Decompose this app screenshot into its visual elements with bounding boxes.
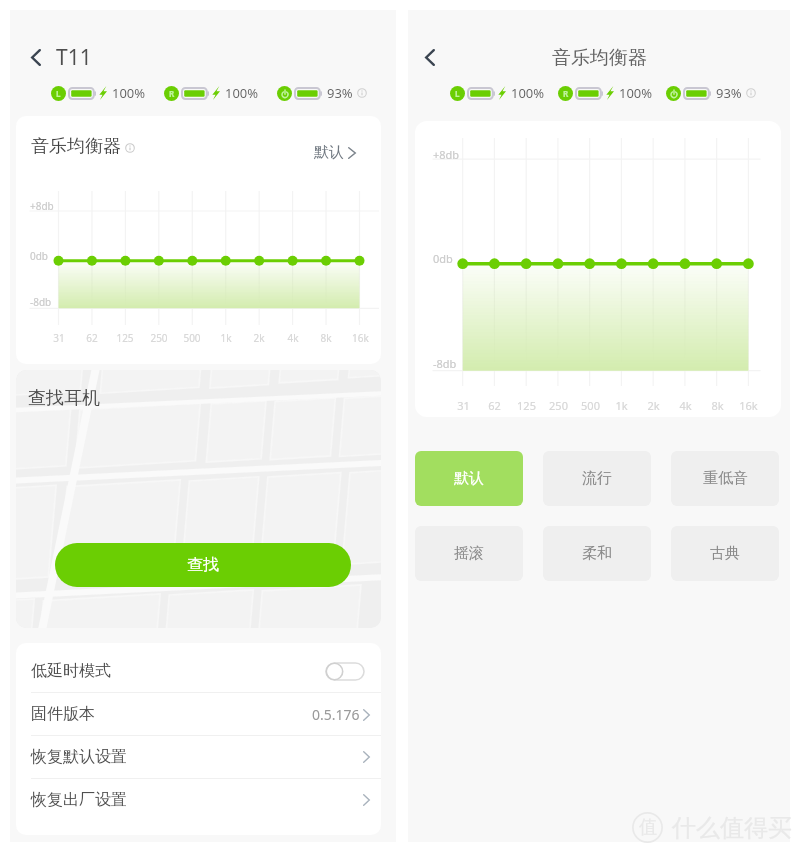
staticText: -8db — [433, 356, 457, 371]
staticText: 16k — [739, 398, 758, 413]
button[interactable]: 恢复出厂设置 — [16, 779, 381, 821]
staticText: 100% — [619, 84, 653, 102]
staticText: 默认 — [314, 143, 344, 162]
staticText: 125 — [116, 331, 134, 345]
button[interactable]: 低延时模式 — [16, 650, 381, 692]
staticText: 2k — [253, 331, 265, 345]
staticText: 100% — [225, 84, 259, 102]
staticText: 8k — [711, 398, 724, 413]
button[interactable]: 摇滚 — [415, 526, 523, 581]
staticText: 重低音 — [703, 469, 748, 488]
staticText: 古典 — [710, 544, 740, 563]
staticText: 31 — [457, 398, 470, 413]
staticText: 固件版本 — [31, 704, 95, 724]
button[interactable]: 固件版本 — [16, 693, 381, 735]
staticText: 什么值得买 — [672, 813, 792, 843]
staticText: R — [563, 88, 569, 99]
staticText: 125 — [517, 398, 536, 413]
staticText: -8db — [30, 295, 52, 309]
button[interactable]: 查找 — [55, 543, 351, 587]
staticText: 100% — [511, 84, 545, 102]
staticText: 1k — [615, 398, 628, 413]
button[interactable]: 柔和 — [543, 526, 651, 581]
staticText: L — [455, 88, 460, 99]
staticText: 查找耳机 — [28, 387, 100, 410]
button[interactable]: 流行 — [543, 451, 651, 506]
staticText: 93% — [327, 84, 353, 102]
staticText: 恢复出厂设置 — [31, 790, 127, 810]
staticText: 16k — [352, 331, 369, 345]
staticText: 恢复默认设置 — [31, 747, 127, 767]
staticText: 默认 — [454, 469, 484, 488]
staticText: 31 — [53, 331, 65, 345]
staticText: 250 — [549, 398, 568, 413]
staticText: 8k — [320, 331, 332, 345]
staticText: 500 — [581, 398, 600, 413]
staticText: L — [56, 88, 61, 99]
staticText: 0db — [433, 251, 453, 266]
button[interactable]: 古典 — [671, 526, 779, 581]
staticText: 音乐均衡器 — [552, 46, 647, 70]
staticText: +8db — [30, 199, 54, 213]
staticText: 摇滚 — [454, 544, 484, 563]
staticText: 250 — [150, 331, 168, 345]
button[interactable]: Back — [415, 42, 445, 72]
staticText: 2k — [647, 398, 660, 413]
staticText: 低延时模式 — [31, 661, 111, 681]
staticText: 音乐均衡器 — [31, 135, 121, 158]
staticText: 4k — [679, 398, 692, 413]
button[interactable]: Back — [21, 42, 51, 72]
staticText: 1k — [220, 331, 232, 345]
staticText: 93% — [716, 84, 742, 102]
staticText: 值 — [639, 816, 657, 839]
staticText: 柔和 — [582, 544, 612, 563]
staticText: 500 — [183, 331, 201, 345]
staticText: 62 — [86, 331, 98, 345]
staticText: 0db — [30, 249, 49, 263]
staticText: T11 — [56, 43, 92, 72]
staticText: +8db — [433, 147, 460, 162]
staticText: 0.5.176 — [312, 705, 360, 724]
staticText: 查找 — [187, 555, 219, 575]
staticText: 100% — [112, 84, 146, 102]
button[interactable]: 重低音 — [671, 451, 779, 506]
staticText: R — [169, 88, 175, 99]
button[interactable]: 默认 — [314, 143, 356, 162]
staticText: 4k — [287, 331, 299, 345]
staticText: 流行 — [582, 469, 612, 488]
staticText: 62 — [488, 398, 501, 413]
button[interactable]: 恢复默认设置 — [16, 736, 381, 778]
button[interactable]: 默认 — [415, 451, 523, 506]
